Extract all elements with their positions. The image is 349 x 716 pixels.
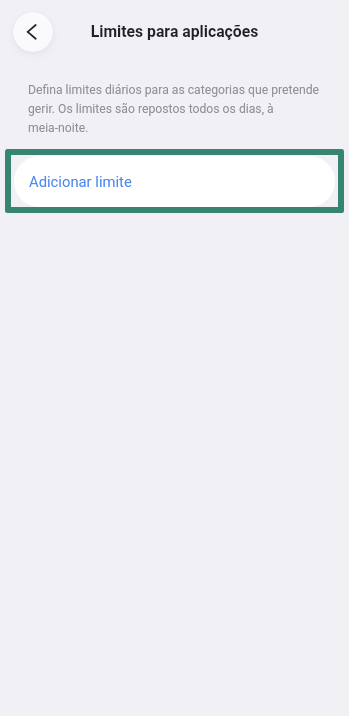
staticText: Defina limites diários para as categoria… — [28, 83, 328, 135]
button[interactable]: Back — [13, 12, 53, 52]
staticText: Adicionar limite — [29, 173, 132, 190]
staticText: Limites para aplicações — [0, 22, 349, 40]
button[interactable]: Adicionar limite — [14, 156, 335, 207]
